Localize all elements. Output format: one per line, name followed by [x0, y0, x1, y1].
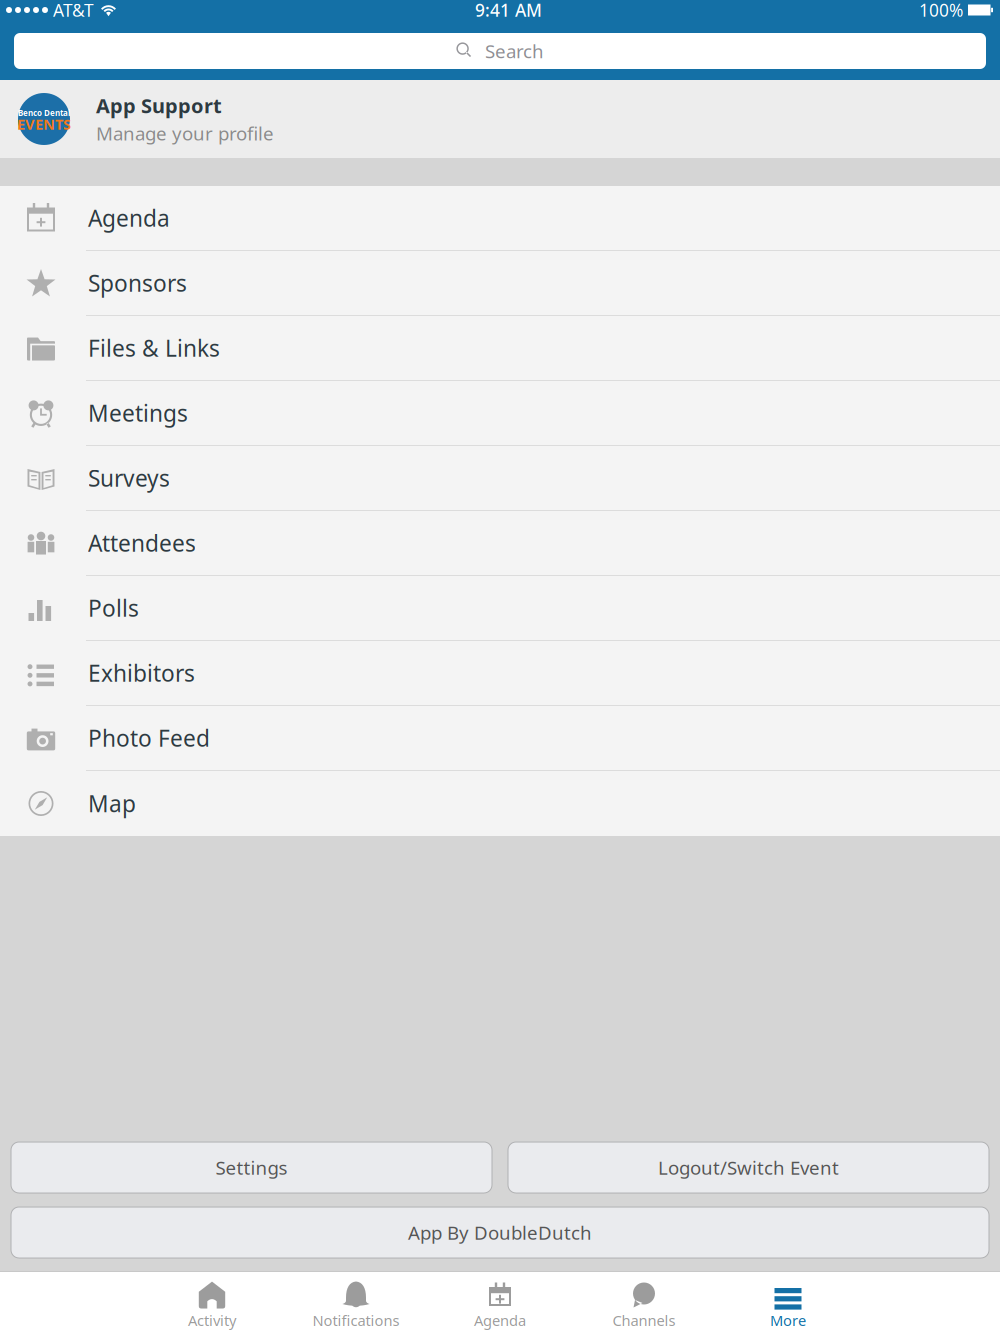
staticText: Attendees — [88, 528, 196, 558]
button[interactable]: Notifications — [284, 1272, 428, 1334]
button[interactable]: More — [716, 1272, 860, 1334]
staticText: Surveys — [88, 463, 170, 493]
staticText: More — [770, 1310, 806, 1330]
button[interactable]: Exhibitors — [0, 641, 1000, 706]
staticText: Activity — [188, 1310, 236, 1330]
staticText: 100% — [919, 0, 963, 21]
button[interactable]: Attendees — [0, 511, 1000, 576]
button[interactable]: Map — [0, 771, 1000, 836]
button[interactable]: Polls — [0, 576, 1000, 641]
button[interactable]: Agenda — [0, 186, 1000, 251]
staticText: Notifications — [312, 1310, 399, 1330]
button[interactable]: Files & Links — [0, 316, 1000, 381]
button[interactable]: Channels — [572, 1272, 716, 1334]
staticText: AT&T — [53, 0, 94, 21]
button[interactable]: App By DoubleDutch — [11, 1207, 989, 1258]
button[interactable]: Benco Dental — [0, 80, 1000, 158]
staticText: App By DoubleDutch — [408, 1220, 592, 1245]
staticText: App Support — [96, 92, 222, 119]
staticText: Sponsors — [88, 268, 187, 298]
staticText: Logout/Switch Event — [658, 1155, 839, 1180]
staticText: Benco Dental — [18, 108, 70, 118]
button[interactable]: Sponsors — [0, 251, 1000, 316]
button[interactable]: Settings — [11, 1142, 492, 1193]
button[interactable]: Logout/Switch Event — [508, 1142, 989, 1193]
staticText: Manage your profile — [96, 121, 274, 146]
button[interactable]: Photo Feed — [0, 706, 1000, 771]
button[interactable]: Agenda — [428, 1272, 572, 1334]
button[interactable]: Search — [14, 33, 986, 69]
staticText: Polls — [88, 593, 139, 623]
button[interactable]: Surveys — [0, 446, 1000, 511]
staticText: 9:41 AM — [475, 0, 542, 21]
staticText: Files & Links — [88, 333, 220, 363]
staticText: Search — [485, 39, 544, 63]
staticText: Meetings — [88, 398, 188, 428]
staticText: Settings — [215, 1155, 287, 1180]
staticText: Exhibitors — [88, 658, 195, 688]
staticText: EVENTS — [17, 114, 71, 134]
button[interactable]: Meetings — [0, 381, 1000, 446]
staticText: Photo Feed — [88, 723, 210, 753]
staticText: Channels — [612, 1310, 675, 1330]
staticText: Map — [88, 788, 136, 818]
staticText: Agenda — [474, 1310, 526, 1330]
button[interactable]: Activity — [140, 1272, 284, 1334]
staticText: Agenda — [88, 203, 170, 233]
